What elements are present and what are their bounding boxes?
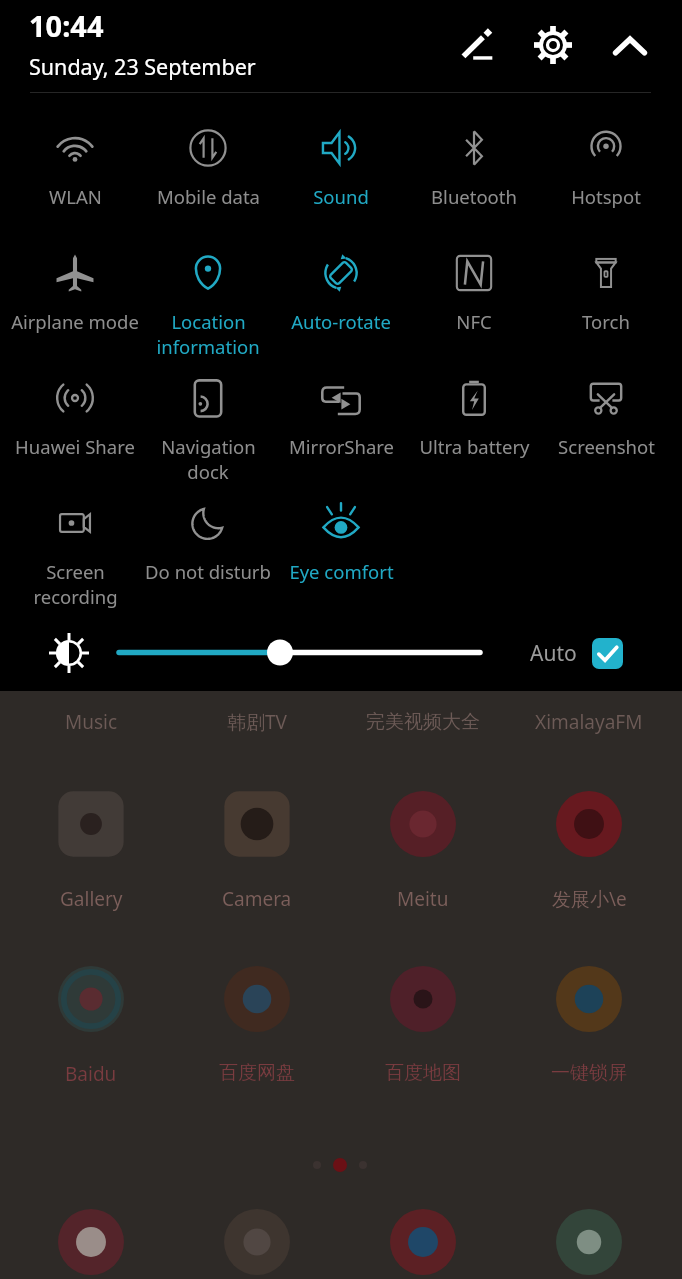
staticText: 百度网盘 <box>219 1061 295 1085</box>
staticText: Music <box>65 709 118 735</box>
staticText: Camera <box>222 886 292 912</box>
button[interactable] <box>506 1208 672 1279</box>
staticText: Screenshot <box>558 434 655 459</box>
staticText: Meitu <box>397 886 449 912</box>
staticText: Screen <box>46 559 105 584</box>
button[interactable]: Do not disturb <box>142 485 274 610</box>
staticText: Hotspot <box>571 184 641 209</box>
button[interactable] <box>174 1208 340 1279</box>
staticText: Mobile data <box>157 184 260 209</box>
button[interactable]: Meitu <box>340 790 506 912</box>
button[interactable]: Torch <box>540 235 672 360</box>
button[interactable]: 一键锁屏 <box>506 965 672 1085</box>
staticText: WLAN <box>49 184 102 209</box>
staticText: Huawei Share <box>15 434 135 459</box>
button[interactable]: MirrorShare <box>275 360 407 485</box>
button[interactable]: Camera <box>174 790 340 912</box>
button[interactable]: Huawei Share <box>9 360 141 485</box>
staticText: Auto <box>530 639 577 668</box>
staticText: MirrorShare <box>289 434 394 459</box>
staticText: 完美视频大全 <box>366 710 480 734</box>
button[interactable]: Screenshot <box>540 360 672 485</box>
staticText: NFC <box>456 309 492 334</box>
button[interactable]: Navigation <box>142 360 274 485</box>
button[interactable]: NFC <box>408 235 540 360</box>
staticText: 发展小\e <box>552 886 627 912</box>
button[interactable]: 百度地图 <box>340 965 506 1085</box>
staticText: Bluetooth <box>431 184 517 209</box>
button[interactable]: Auto <box>530 632 623 675</box>
staticText: 韩剧TV <box>227 709 287 735</box>
button[interactable]: 发展小\e <box>506 790 672 912</box>
button[interactable]: 百度网盘 <box>174 965 340 1085</box>
staticText: information <box>156 334 260 359</box>
button[interactable]: Settings <box>525 17 581 73</box>
button[interactable]: XimalayaFM <box>506 709 672 735</box>
staticText: 10:44 <box>29 6 104 45</box>
staticText: Eye comfort <box>289 559 394 584</box>
staticText: Auto-rotate <box>291 309 391 334</box>
staticText: Torch <box>582 309 630 334</box>
staticText: Sunday, 23 September <box>29 52 256 81</box>
button[interactable] <box>340 1208 506 1279</box>
staticText: Sound <box>313 184 369 209</box>
button[interactable]: Ultra battery <box>408 360 540 485</box>
button[interactable]: Baidu <box>8 965 174 1087</box>
button[interactable]: Mobile data <box>142 110 274 235</box>
button[interactable] <box>8 1208 174 1279</box>
button[interactable]: Screen <box>9 485 141 610</box>
staticText: Baidu <box>65 1061 117 1087</box>
staticText: Do not disturb <box>145 559 271 584</box>
staticText: Navigation <box>161 434 256 459</box>
button[interactable]: Edit <box>449 17 505 73</box>
button[interactable]: Brightness <box>45 630 91 676</box>
button[interactable]: Location <box>142 235 274 360</box>
staticText: Location <box>171 309 246 334</box>
button[interactable]: Hotspot <box>540 110 672 235</box>
staticText: Airplane mode <box>11 309 139 334</box>
button[interactable]: Collapse <box>601 17 657 73</box>
button[interactable]: Bluetooth <box>408 110 540 235</box>
button[interactable]: Auto-rotate <box>275 235 407 360</box>
staticText: 一键锁屏 <box>551 1061 627 1085</box>
button[interactable]: Eye comfort <box>275 485 407 610</box>
button[interactable]: Airplane mode <box>9 235 141 360</box>
staticText: dock <box>187 459 229 484</box>
staticText: XimalayaFM <box>535 709 643 735</box>
button[interactable]: 完美视频大全 <box>340 709 506 735</box>
staticText: Gallery <box>60 886 123 912</box>
staticText: 百度地图 <box>385 1061 461 1085</box>
button[interactable]: Gallery <box>8 790 174 912</box>
staticText: Ultra battery <box>419 434 530 459</box>
button[interactable]: WLAN <box>9 110 141 235</box>
staticText: recording <box>33 584 118 609</box>
button[interactable] <box>113 637 486 668</box>
button[interactable]: Music <box>8 709 174 735</box>
button[interactable]: Sound <box>275 110 407 235</box>
button[interactable]: 韩剧TV <box>174 709 340 735</box>
